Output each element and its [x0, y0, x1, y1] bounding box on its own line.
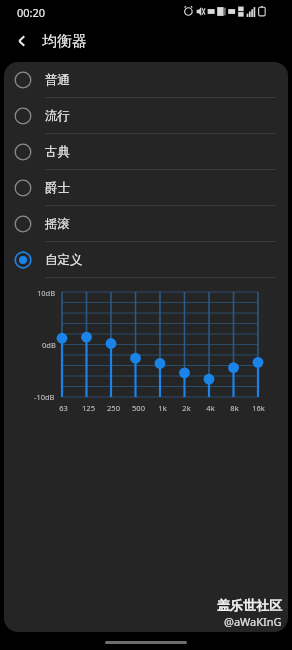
staticText: 爵士	[45, 180, 70, 196]
staticText: -10dB	[34, 392, 55, 402]
button[interactable]: 摇滚	[4, 206, 288, 241]
button[interactable]: Back	[8, 27, 36, 55]
staticText: 古典	[45, 144, 70, 160]
button[interactable]: 普通	[4, 62, 288, 97]
staticText: 10dB	[37, 288, 56, 298]
button[interactable]: 古典	[4, 134, 288, 169]
staticText: 16k	[252, 403, 265, 413]
staticText: 250	[107, 403, 120, 413]
staticText: 自定义	[45, 252, 83, 268]
staticText: 125	[82, 403, 95, 413]
staticText: 00:20	[17, 5, 46, 20]
staticText: 500	[132, 403, 145, 413]
staticText: 盖乐世社区	[217, 597, 282, 613]
staticText: 摇滚	[45, 216, 70, 232]
button[interactable]: 自定义	[4, 242, 288, 277]
staticText: 4k	[206, 403, 215, 413]
staticText: 63	[59, 403, 68, 413]
button[interactable]: 流行	[4, 98, 288, 133]
staticText: @aWaKInG	[224, 614, 282, 629]
staticText: 2k	[182, 403, 191, 413]
button[interactable]: 爵士	[4, 170, 288, 205]
staticText: 流行	[45, 108, 70, 124]
staticText: 均衡器	[42, 32, 87, 51]
staticText: 0dB	[42, 340, 56, 350]
staticText: 1k	[158, 403, 167, 413]
staticText: 8k	[230, 403, 239, 413]
staticText: 普通	[45, 72, 70, 88]
